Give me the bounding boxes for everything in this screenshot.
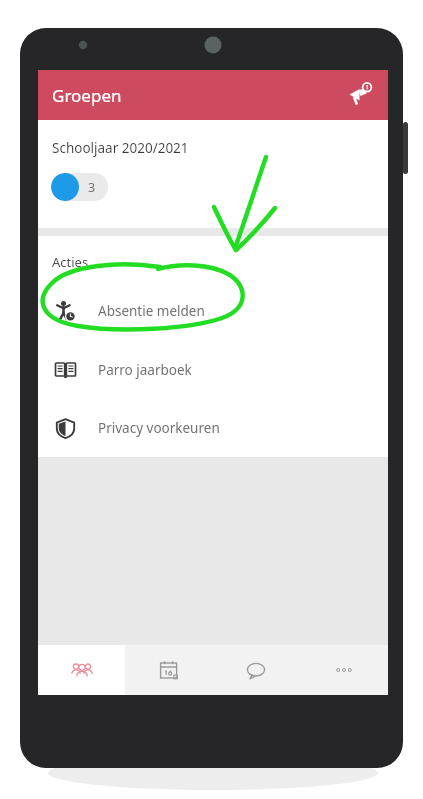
button[interactable]: Calendar [125, 645, 212, 695]
button[interactable]: Absentie melden [38, 281, 388, 340]
staticText: Absentie melden [98, 302, 205, 320]
staticText: Privacy voorkeuren [98, 419, 220, 437]
staticText: 3 [88, 179, 96, 196]
button[interactable]: 3 [51, 173, 108, 201]
button[interactable]: More [300, 645, 388, 695]
button[interactable]: Messages [212, 645, 300, 695]
staticText: Acties [52, 253, 89, 271]
staticText: Parro jaarboek [98, 361, 192, 379]
staticText: Schooljaar 2020/2021 [52, 139, 189, 157]
staticText: Groepen [52, 84, 122, 107]
button[interactable]: Announcements [338, 73, 382, 117]
button[interactable]: Groups [38, 645, 125, 695]
button[interactable]: Privacy voorkeuren [38, 399, 388, 457]
button[interactable]: Parro jaarboek [38, 340, 388, 399]
